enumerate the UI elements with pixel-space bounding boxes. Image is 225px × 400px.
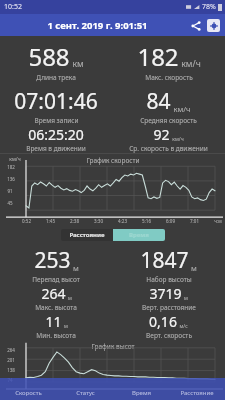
staticText: 3719	[149, 284, 182, 303]
staticText: 264	[7, 347, 15, 353]
staticText: 78%	[202, 2, 216, 12]
staticText: км/ч	[172, 136, 184, 143]
staticText: м	[64, 323, 68, 330]
staticText: Время в движении	[26, 144, 86, 153]
staticText: 182	[7, 164, 15, 170]
staticText: 4:23	[118, 218, 127, 224]
staticText: График скорости	[86, 156, 140, 165]
staticText: Расстояние	[180, 389, 214, 397]
staticText: 201	[7, 357, 15, 363]
staticText: 588	[28, 40, 70, 73]
button[interactable]: Время	[113, 229, 165, 241]
button[interactable]: Статус	[57, 378, 113, 400]
button[interactable]: Map	[207, 19, 220, 32]
staticText: 264	[41, 284, 66, 303]
button[interactable]: Расстояние	[61, 229, 113, 241]
staticText: м	[73, 263, 79, 273]
staticText: 7:01	[190, 218, 199, 224]
staticText: 136	[7, 176, 15, 182]
staticText: 11	[45, 312, 62, 331]
staticText: 2:38	[70, 218, 79, 224]
staticText: км/ч	[181, 58, 201, 70]
staticText: 6:09	[166, 218, 175, 224]
staticText: 1 сент. 2019 г. 9:01:51	[47, 19, 148, 32]
staticText: Макс. высота	[35, 303, 77, 312]
staticText: 92	[153, 125, 170, 144]
button[interactable]: Расстояние	[169, 378, 225, 400]
staticText: Время	[132, 389, 151, 397]
staticText: 182	[137, 40, 179, 73]
staticText: 74	[7, 377, 13, 383]
staticText: 10:52	[4, 2, 22, 12]
staticText: Ср. скорость в движении	[129, 144, 208, 153]
staticText: 06:25:20	[28, 125, 84, 144]
staticText: Статус	[76, 389, 95, 397]
staticText: Скорость	[15, 389, 42, 397]
staticText: Набор высоты	[146, 275, 192, 284]
staticText: 3:30	[94, 218, 103, 224]
staticText: 253	[34, 246, 71, 275]
button[interactable]: Share	[188, 18, 203, 33]
staticText: 0:52	[22, 218, 31, 224]
staticText: 84	[146, 87, 171, 116]
staticText: м/с	[179, 323, 188, 330]
button[interactable]: Время	[113, 378, 169, 400]
staticText: Верт. скорость	[146, 331, 192, 340]
button[interactable]: Скорость	[0, 378, 57, 400]
staticText: км/ч	[9, 156, 21, 163]
staticText: 07:01:46	[14, 87, 98, 116]
staticText: Расстояние	[69, 231, 105, 239]
staticText: 91	[7, 188, 13, 194]
staticText: м	[184, 295, 188, 302]
staticText: м	[191, 263, 197, 273]
staticText: ч:м	[214, 218, 222, 224]
staticText: Средняя скорость	[140, 116, 197, 125]
staticText: км/ч	[173, 104, 191, 114]
staticText: 5:16	[142, 218, 151, 224]
staticText: 1:45	[46, 218, 55, 224]
staticText: км	[72, 58, 84, 70]
staticText: 138	[7, 367, 15, 373]
staticText: Длина трека	[36, 73, 76, 82]
staticText: Перепад высот	[32, 275, 80, 284]
staticText: 45	[7, 200, 13, 206]
staticText: Верт. расстояние	[142, 303, 196, 312]
staticText: м	[68, 295, 72, 302]
staticText: 0,16	[149, 312, 177, 331]
staticText: Время записи	[34, 116, 79, 125]
staticText: Время	[129, 231, 149, 239]
staticText: Макс. скорость	[145, 73, 193, 82]
staticText: 1847	[140, 246, 189, 275]
staticText: График высот	[91, 342, 135, 351]
staticText: Мин. высота	[36, 331, 76, 340]
